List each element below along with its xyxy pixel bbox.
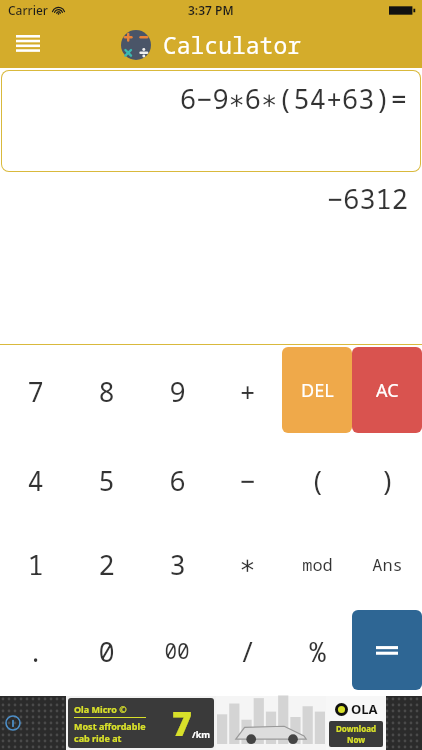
button[interactable]: mod (282, 522, 352, 606)
button[interactable]: Menu (8, 24, 48, 64)
staticText: ) (379, 462, 396, 499)
staticText: 3:37 PM (188, 2, 234, 18)
staticText: 6−9∗6∗(54+63)= (180, 80, 407, 117)
staticText: Ans (372, 553, 403, 576)
button[interactable]: 1 (0, 522, 71, 606)
staticText: 9 (169, 373, 186, 410)
button[interactable]: 00 (142, 606, 212, 696)
staticText: Carrier (8, 2, 48, 18)
button[interactable]: Ans (352, 522, 422, 606)
button[interactable]: 7 (0, 345, 71, 438)
button[interactable]: 4 (0, 438, 71, 522)
staticText: % (309, 633, 326, 670)
button[interactable]: ∗ (212, 522, 282, 606)
staticText: DEL (301, 378, 334, 403)
staticText: −6312 (327, 180, 408, 217)
button[interactable]: Equals (352, 610, 422, 690)
staticText: mod (302, 553, 333, 576)
staticText: Calculator (163, 29, 302, 60)
staticText: 2 (98, 546, 115, 583)
staticText: . (27, 633, 44, 670)
staticText: 0 (98, 633, 115, 670)
button[interactable]: ( (282, 438, 352, 522)
button[interactable]: 6−9∗6∗(54+63)= (1, 70, 421, 172)
button[interactable]: 8 (71, 345, 142, 438)
staticText: 5 (98, 462, 115, 499)
staticText: 7 (27, 373, 44, 410)
button[interactable]: − (212, 438, 282, 522)
staticText: ∗ (239, 549, 256, 580)
staticText: Ola Micro © (74, 703, 127, 715)
button[interactable]: 3 (142, 522, 212, 606)
staticText: OLA (351, 700, 378, 718)
staticText: 8 (98, 373, 115, 410)
staticText: 1 (27, 546, 44, 583)
staticText: Download (336, 723, 376, 734)
button[interactable]: 0 (71, 606, 142, 696)
staticText: 00 (164, 637, 190, 666)
staticText: AC (376, 378, 399, 403)
button[interactable]: 5 (71, 438, 142, 522)
staticText: 6 (169, 462, 186, 499)
button[interactable]: / (212, 606, 282, 696)
button[interactable]: . (0, 606, 71, 696)
staticText: 7 (172, 700, 192, 746)
staticText: / (239, 633, 256, 670)
staticText: 3 (169, 546, 186, 583)
button[interactable]: Ola advertisement (66, 696, 386, 750)
staticText: ( (309, 462, 326, 499)
staticText: Most affordable (74, 720, 146, 732)
button[interactable]: 6 (142, 438, 212, 522)
staticText: + (239, 373, 256, 410)
button[interactable]: + (212, 345, 282, 438)
button[interactable]: % (282, 606, 352, 696)
button[interactable]: 2 (71, 522, 142, 606)
button[interactable]: 9 (142, 345, 212, 438)
staticText: /km (192, 728, 211, 740)
button[interactable]: AC (352, 347, 422, 433)
button[interactable]: DEL (282, 347, 352, 433)
staticText: − (239, 462, 256, 499)
staticText: cab ride at (74, 732, 122, 744)
button[interactable]: ) (352, 438, 422, 522)
staticText: 4 (27, 462, 44, 499)
staticText: Now (347, 734, 366, 745)
